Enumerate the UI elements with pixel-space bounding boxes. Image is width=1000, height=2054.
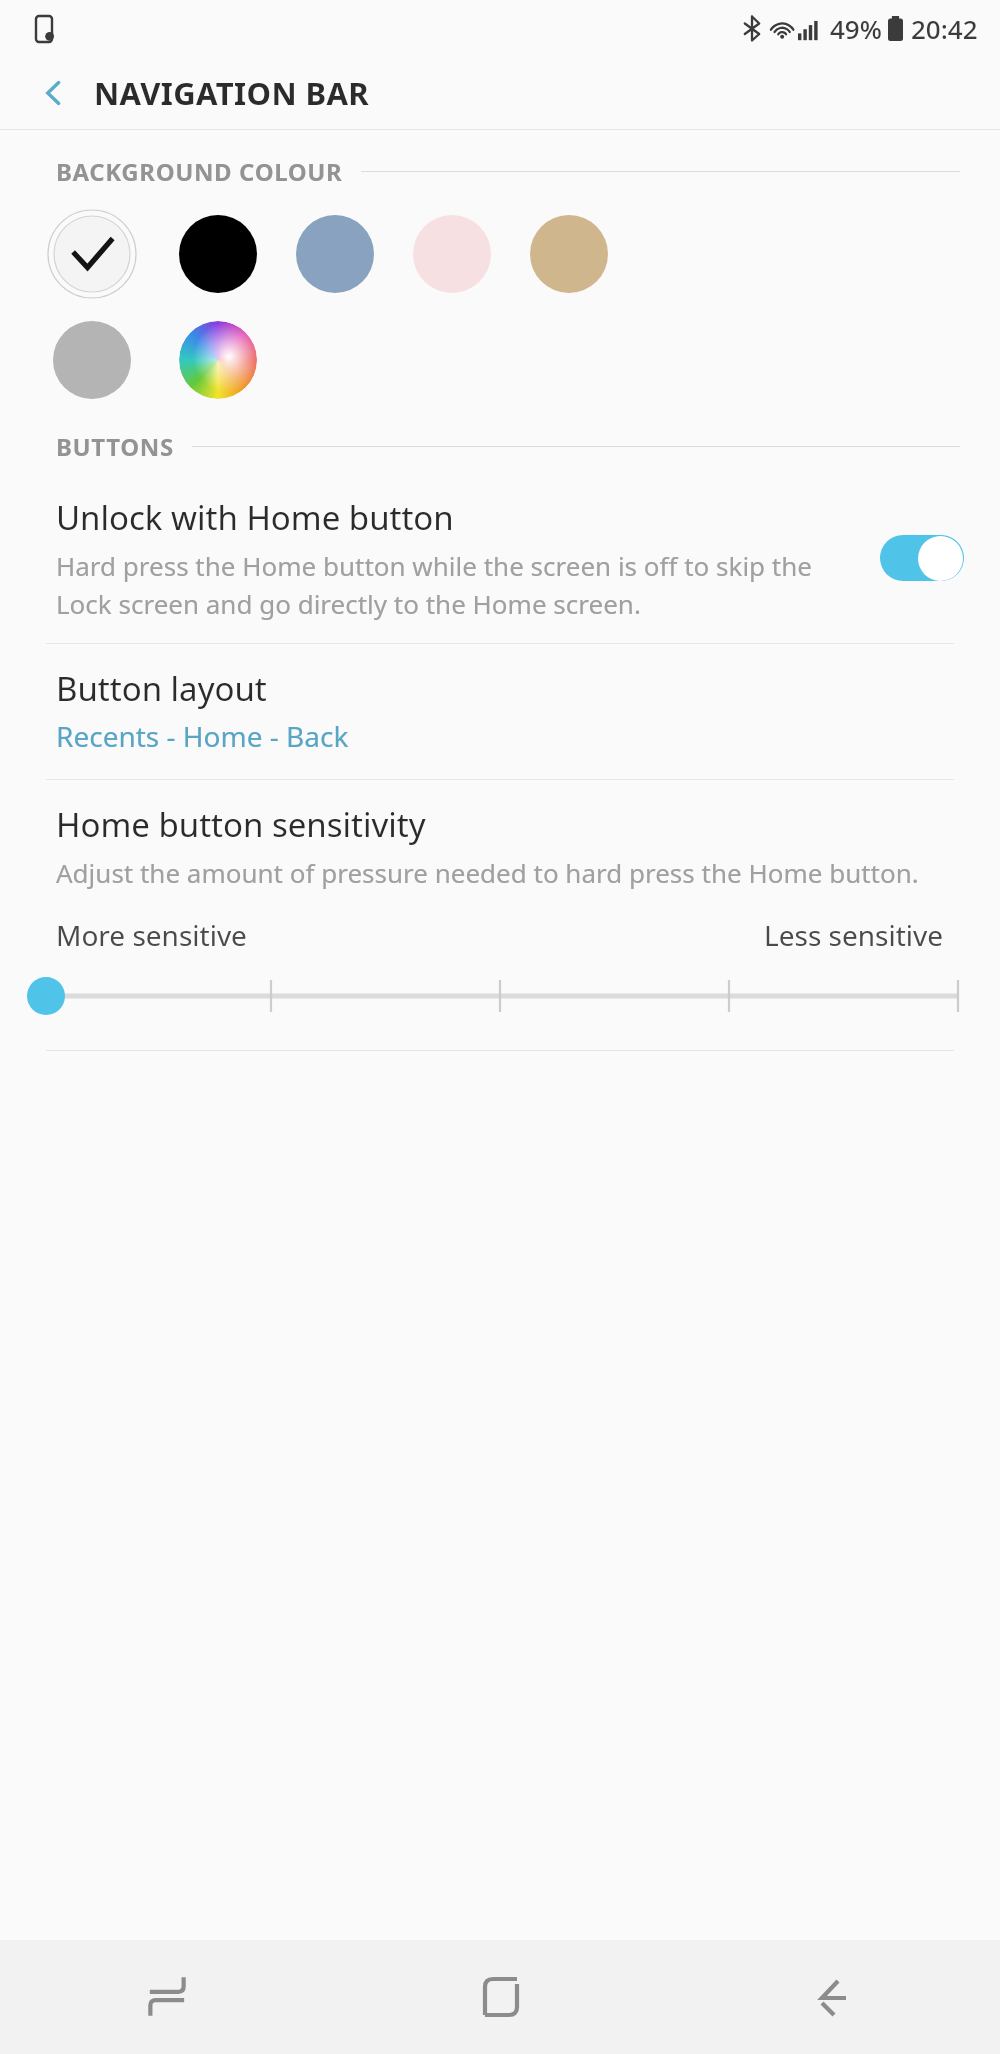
staticText: More sensitive	[56, 916, 247, 954]
button[interactable]: Pink	[413, 215, 491, 293]
button[interactable]: Custom colour	[179, 321, 257, 399]
button[interactable]: Default colour, selected	[44, 206, 140, 302]
staticText: BACKGROUND COLOUR	[56, 155, 343, 188]
staticText: 20:42	[911, 11, 978, 46]
button[interactable]: Grey	[53, 321, 131, 399]
button[interactable]: Blue	[296, 215, 374, 293]
staticText: BUTTONS	[56, 430, 174, 463]
button[interactable]: Unlock with Home button	[0, 475, 1000, 643]
button[interactable]: Tan	[530, 215, 608, 293]
staticText: Home button sensitivity	[56, 802, 426, 847]
button[interactable]: Home	[334, 1940, 667, 2054]
staticText: 49%	[830, 11, 882, 46]
button[interactable]: Back	[30, 69, 78, 117]
button[interactable]: Back	[667, 1940, 1000, 2054]
staticText: Recents - Home - Back	[56, 717, 349, 755]
staticText: Adjust the amount of pressure needed to …	[56, 855, 919, 890]
staticText: Hard press the Home button while the scr…	[56, 548, 862, 621]
button[interactable]: Recents	[0, 1940, 334, 2054]
button[interactable]: Unlock with Home button toggle, on	[880, 535, 964, 581]
staticText: Less sensitive	[764, 916, 944, 954]
staticText: NAVIGATION BAR	[94, 72, 370, 114]
button[interactable]: Home button sensitivity slider	[0, 968, 1000, 1024]
staticText: Unlock with Home button	[56, 495, 454, 540]
staticText: Button layout	[56, 666, 267, 711]
button[interactable]: Button layout	[0, 644, 1000, 779]
button[interactable]: Black	[179, 215, 257, 293]
